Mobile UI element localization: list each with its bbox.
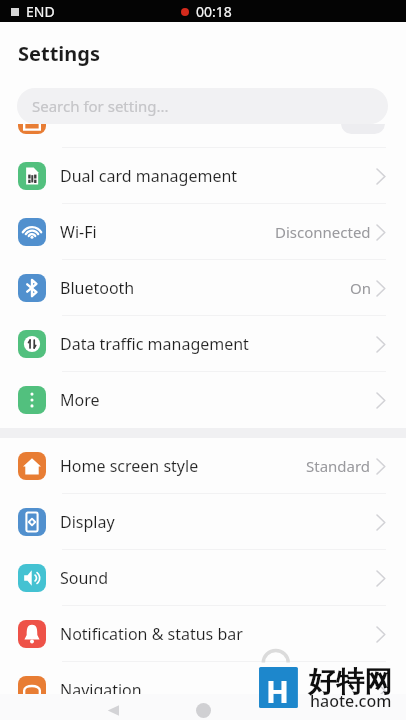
button[interactable]: Display — [0, 494, 406, 550]
button[interactable]: Back — [96, 699, 130, 720]
staticText: 00:18 — [196, 2, 232, 21]
button[interactable]: Data traffic management — [0, 316, 406, 372]
staticText: Navigation — [60, 679, 142, 701]
button[interactable]: Search for setting... — [17, 88, 388, 124]
button[interactable]: Dual card management — [0, 148, 406, 204]
button[interactable]: Notification & status bar — [0, 606, 406, 662]
staticText: Sound — [60, 567, 109, 589]
staticText: haote.com — [310, 690, 392, 712]
staticText: Standard — [306, 456, 371, 476]
staticText: On — [350, 278, 371, 298]
staticText: Dual card management — [60, 165, 238, 187]
staticText: Data traffic management — [60, 333, 249, 355]
button[interactable]: Wi-Fi — [0, 204, 406, 260]
staticText: Settings — [18, 40, 100, 67]
button[interactable]: Sound — [0, 550, 406, 606]
button[interactable]: Bluetooth — [0, 260, 406, 316]
staticText: Home screen style — [60, 455, 199, 477]
staticText: Bluetooth — [60, 277, 135, 299]
button[interactable]: Home — [186, 699, 220, 720]
staticText: END — [26, 2, 55, 21]
staticText: Wi-Fi — [60, 221, 97, 243]
staticText: Search for setting... — [32, 96, 169, 116]
button[interactable]: More — [0, 372, 406, 428]
button[interactable]: Home screen style — [0, 438, 406, 494]
staticText: Display — [60, 511, 115, 533]
staticText: 好特网 — [308, 664, 392, 699]
button[interactable]: Navigation — [0, 662, 406, 718]
staticText: Disconnected — [275, 222, 371, 242]
staticText: H — [266, 671, 289, 712]
staticText: More — [60, 389, 100, 411]
staticText: Notification & status bar — [60, 623, 243, 645]
